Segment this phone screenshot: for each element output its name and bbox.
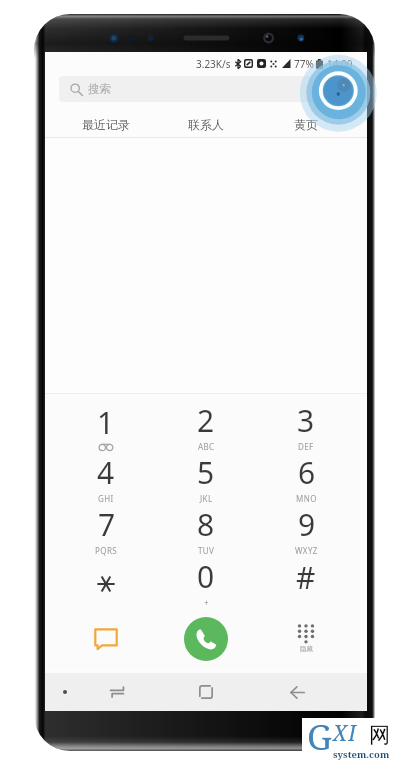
staticText: 3 (297, 400, 315, 441)
staticText: JKL (200, 493, 213, 504)
button[interactable]: # (256, 556, 356, 608)
staticText: 6 (298, 452, 316, 493)
button[interactable]: 7 (56, 504, 156, 556)
button[interactable]: Recent apps (97, 673, 137, 711)
staticText: 8 (197, 504, 215, 545)
staticText: 2 (197, 400, 215, 441)
staticText: 网 (369, 722, 390, 748)
button[interactable]: Assistant (53, 673, 77, 711)
staticText: GHI (98, 493, 114, 504)
staticText: DEF (298, 441, 314, 452)
staticText: 联系人 (188, 117, 224, 132)
button[interactable]: Home (186, 673, 226, 711)
button[interactable]: 联系人 (156, 110, 256, 138)
button[interactable] (56, 556, 156, 608)
button[interactable]: 搜索 (59, 76, 353, 102)
staticText: XI (333, 719, 358, 748)
button[interactable]: 1 (56, 400, 156, 452)
staticText: 9 (298, 504, 316, 545)
staticText: 0 (197, 556, 215, 597)
staticText: 黄页 (294, 117, 318, 132)
staticText: 3.23K/s (196, 57, 231, 71)
staticText: WXYZ (295, 545, 318, 556)
button[interactable]: 8 (156, 504, 256, 556)
button[interactable]: 最近记录 (56, 110, 156, 138)
button[interactable]: 2 (156, 400, 256, 452)
button[interactable]: 3 (256, 400, 356, 452)
staticText: MNO (296, 493, 317, 504)
staticText: system.com (333, 748, 390, 761)
staticText: 4 (97, 452, 115, 493)
staticText: 搜索 (88, 82, 111, 96)
button[interactable]: 5 (156, 452, 256, 504)
staticText: + (204, 597, 209, 608)
staticText: 最近记录 (82, 117, 130, 132)
staticText: G (307, 713, 332, 759)
staticText: TUV (198, 545, 215, 556)
staticText: 1 (97, 402, 115, 443)
staticText: 5 (197, 452, 215, 493)
button[interactable]: 6 (256, 452, 356, 504)
staticText: ABC (198, 441, 215, 452)
staticText: 77% (294, 57, 314, 71)
button[interactable]: 9 (256, 504, 356, 556)
staticText: 隐藏 (300, 645, 313, 653)
button[interactable]: 0 (156, 556, 256, 608)
staticText: # (296, 557, 316, 598)
button[interactable]: Back (277, 673, 317, 711)
button[interactable]: Hide keypad (256, 608, 356, 669)
button[interactable]: 4 (56, 452, 156, 504)
staticText: 14:00 (327, 57, 353, 71)
button[interactable]: Send message (56, 608, 156, 669)
button[interactable]: Call (184, 617, 228, 661)
staticText: 7 (98, 504, 116, 545)
button[interactable]: 黄页 (256, 110, 356, 138)
staticText: PQRS (95, 545, 118, 556)
